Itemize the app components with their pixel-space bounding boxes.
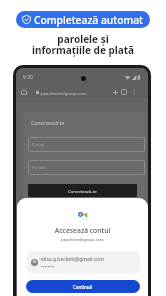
staticText: Conectează-te <box>31 120 65 127</box>
staticText: •••••••• <box>41 264 55 270</box>
button[interactable]: Conectează-te <box>28 184 137 197</box>
other: Tabs <box>121 89 127 95</box>
other: New tab <box>113 90 118 95</box>
button[interactable]: elisa.g.beckett@gmail.com <box>27 251 140 274</box>
staticText: Completează automat <box>34 13 144 27</box>
staticText: Conectează-te <box>68 188 97 194</box>
staticText: elisa.g.beckett@gmail.com <box>41 256 104 263</box>
staticText: E-mail <box>32 141 45 147</box>
other: Home <box>21 89 27 95</box>
staticText: 9:30 <box>23 74 33 81</box>
staticText: Parolă <box>32 164 45 170</box>
staticText: peachtreeklgroup.com <box>41 90 87 96</box>
button[interactable]: E-mail <box>28 137 145 152</box>
other: More options <box>133 89 135 95</box>
other: Google Password Manager <box>78 211 87 217</box>
button[interactable]: Parolă <box>28 160 145 175</box>
button[interactable]: Completează automat <box>16 11 150 28</box>
button[interactable]: Continuă <box>26 280 140 293</box>
staticText: Continuă <box>73 284 93 290</box>
staticText: Accesează contul <box>17 226 148 235</box>
staticText: peachtreeklgroup.com <box>17 237 148 242</box>
staticText: parolele și informațiile de plată <box>0 32 166 57</box>
